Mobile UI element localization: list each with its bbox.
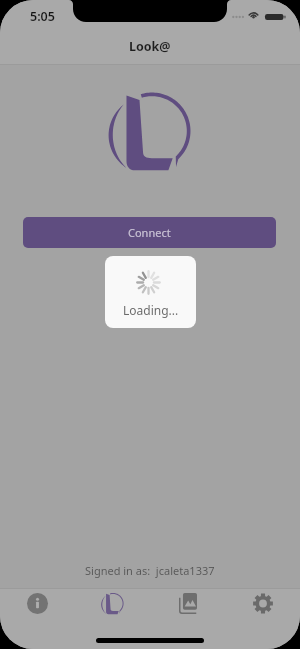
button[interactable]: Connect [23, 217, 276, 248]
staticText: 5:05 [30, 8, 55, 25]
button[interactable]: Gallery [150, 587, 225, 619]
button[interactable]: Settings [225, 587, 300, 619]
staticText: Connect [128, 225, 171, 240]
button[interactable]: Info [0, 587, 75, 619]
staticText: Loading... [123, 302, 179, 318]
staticText: Look@ [129, 38, 171, 55]
button[interactable]: Home [75, 587, 150, 619]
staticText: Signed in as: jcaleta1337 [85, 563, 215, 578]
